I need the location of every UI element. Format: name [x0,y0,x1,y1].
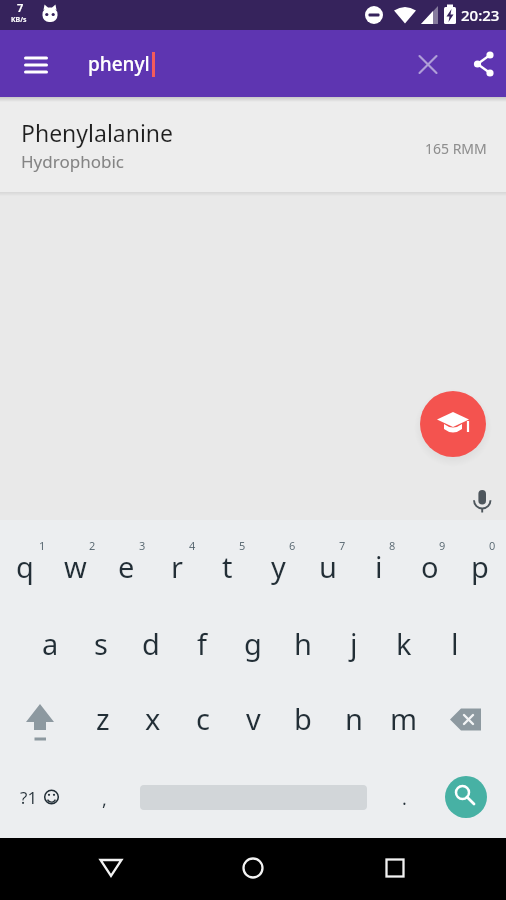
button[interactable]: s [76,610,126,676]
staticText: e [118,547,135,586]
staticText: x [145,699,161,738]
button[interactable] [0,97,506,193]
button[interactable]: p [455,533,505,599]
button[interactable]: k [379,610,429,676]
button[interactable]: b [278,685,328,751]
button[interactable] [227,838,279,900]
staticText: c [196,699,210,738]
staticText: q [16,547,34,586]
button[interactable]: i [354,533,404,599]
staticText: 165 RMM [425,139,487,157]
button[interactable]: u [303,533,353,599]
staticText: b [294,699,312,738]
button[interactable]: m [379,685,429,751]
staticText: 7 [17,0,24,15]
staticText: 4 [189,538,196,553]
staticText: Phenylalanine [21,117,174,148]
staticText: k [396,624,412,663]
button[interactable]: g [228,610,278,676]
button[interactable] [70,40,400,88]
button[interactable] [20,765,76,827]
staticText: 7 [339,538,346,553]
staticText: KB/s [11,15,27,25]
staticText: 1 [39,538,46,553]
button[interactable]: y [253,533,303,599]
staticText: s [94,624,108,663]
staticText: o [421,547,439,586]
staticText: y [271,547,286,586]
staticText: 6 [289,538,296,553]
button[interactable]: x [128,685,178,751]
button[interactable] [369,838,421,900]
staticText: w [64,547,87,586]
staticText: n [345,699,363,738]
staticText: 8 [389,538,396,553]
button[interactable]: h [278,610,328,676]
button[interactable]: z [78,685,128,751]
button[interactable] [466,44,506,84]
button[interactable]: r [152,533,202,599]
button[interactable]: w [50,533,100,599]
button[interactable] [445,776,487,818]
button[interactable] [440,690,496,750]
button[interactable]: . [379,765,429,831]
button[interactable]: f [177,610,227,676]
button[interactable]: t [202,533,252,599]
staticText: l [451,624,459,663]
staticText: phenyl [88,51,150,77]
button[interactable]: , [79,766,129,832]
button[interactable]: d [126,610,176,676]
staticText: f [197,624,207,663]
staticText: 9 [439,538,446,553]
button[interactable]: j [329,610,379,676]
staticText: a [42,624,59,663]
staticText: 0 [489,538,496,553]
button[interactable]: v [228,685,278,751]
staticText: i [375,547,383,586]
staticText: Hydrophobic [21,150,124,173]
staticText: t [222,547,233,586]
button[interactable] [12,44,60,84]
staticText: g [244,624,262,663]
button[interactable]: o [405,533,455,599]
staticText: u [319,547,337,586]
button[interactable] [408,44,448,84]
staticText: r [171,547,183,586]
button[interactable] [462,483,502,523]
staticText: p [471,547,489,586]
staticText: 20:23 [461,5,500,25]
staticText: , [102,787,107,812]
button[interactable] [420,391,486,457]
button[interactable]: q [0,533,50,599]
staticText: ?1 [20,786,38,809]
staticText: m [390,699,418,738]
button[interactable]: e [101,533,151,599]
button[interactable]: a [25,610,75,676]
staticText: 3 [139,538,146,553]
staticText: 5 [239,538,246,553]
button[interactable]: l [430,610,480,676]
button[interactable]: n [329,685,379,751]
staticText: h [294,624,312,663]
staticText: d [142,624,160,663]
button[interactable] [85,838,137,900]
button[interactable]: c [178,685,228,751]
staticText: j [350,624,358,663]
staticText: v [246,699,261,738]
staticText: . [402,786,407,811]
staticText: z [96,699,110,738]
staticText: 2 [89,538,96,553]
